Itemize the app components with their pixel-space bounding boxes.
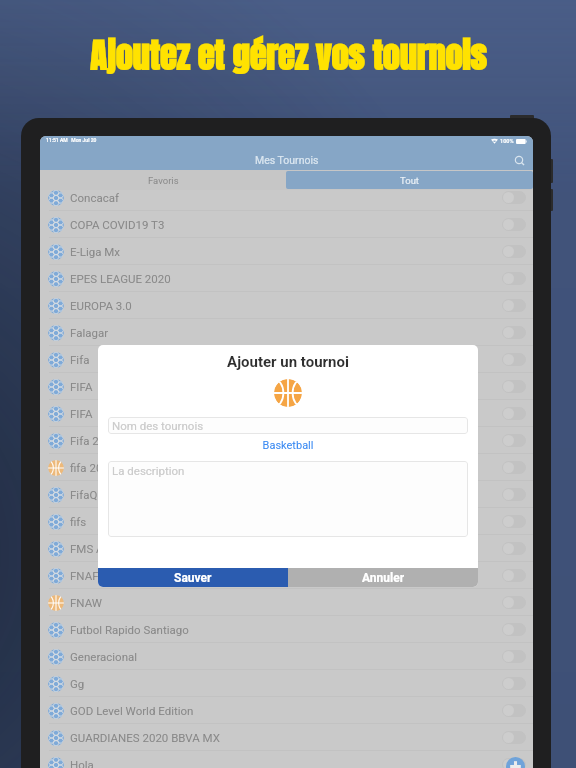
staticText: Annuler [362, 571, 405, 585]
staticText: Futbol Rapido Santiago [70, 623, 189, 636]
button[interactable] [502, 299, 526, 312]
staticText: COPA COVID19 T3 [70, 218, 165, 231]
staticText: Fifa 21 [70, 434, 106, 447]
staticText: FMS Argentina [70, 542, 146, 555]
button[interactable]: GUARDIANES 2020 BBVA MX [40, 724, 533, 751]
button[interactable]: Fifa 21 [40, 427, 533, 454]
button[interactable]: Add tournament [506, 757, 525, 768]
button[interactable]: Generacional [40, 643, 533, 670]
button[interactable]: Concacaf [40, 190, 533, 211]
staticText: La description [112, 464, 185, 477]
button[interactable]: FNAF [40, 562, 533, 589]
button[interactable] [502, 704, 526, 717]
button[interactable] [502, 380, 526, 393]
button[interactable]: FMS Argentina [40, 535, 533, 562]
button[interactable]: Sauver [98, 568, 288, 587]
staticText: GOD Level World Edition [70, 704, 194, 717]
staticText: Concacaf [70, 191, 119, 204]
button[interactable]: Nom des tournois [108, 417, 468, 434]
button[interactable]: COPA COVID19 T3 [40, 211, 533, 238]
staticText: FNAW [70, 596, 102, 609]
button[interactable]: Futbol Rapido Santiago [40, 616, 533, 643]
button[interactable]: fifa 20 [40, 454, 533, 481]
staticText: FIFA [70, 380, 93, 393]
button[interactable]: Gg [40, 670, 533, 697]
staticText: Sauver [174, 571, 212, 585]
staticText: fifa 20 [70, 461, 103, 474]
button[interactable]: GOD Level World Edition [40, 697, 533, 724]
button[interactable] [502, 542, 526, 555]
staticText: Ajoutez et gérez vos tournois [0, 30, 576, 81]
button[interactable]: FIFA [40, 373, 533, 400]
button[interactable] [502, 677, 526, 690]
button[interactable]: Basketball [108, 439, 468, 452]
button[interactable] [502, 758, 526, 768]
button[interactable]: La description [108, 461, 468, 537]
button[interactable] [502, 731, 526, 744]
button[interactable]: EPES LEAGUE 2020 [40, 265, 533, 292]
button[interactable] [502, 191, 526, 204]
staticText: 11:51 AM Mon Jul 20 [46, 137, 97, 143]
button[interactable] [502, 623, 526, 636]
button[interactable]: Favoris [40, 170, 286, 190]
button[interactable]: fifs [40, 508, 533, 535]
button[interactable] [502, 218, 526, 231]
staticText: FNAF [70, 569, 99, 582]
button[interactable]: Annuler [288, 568, 478, 587]
button[interactable]: Hola [40, 751, 533, 768]
staticText: Falagar [70, 326, 109, 339]
button[interactable]: EUROPA 3.0 [40, 292, 533, 319]
staticText: FifaQ [70, 488, 98, 501]
staticText: Ajouter un tournoi [108, 353, 468, 371]
button[interactable]: E-Liga Mx [40, 238, 533, 265]
staticText: Hola [70, 758, 94, 768]
staticText: FIFA [70, 407, 93, 420]
staticText: 100% [500, 138, 514, 144]
staticText: GUARDIANES 2020 BBVA MX [70, 731, 220, 744]
button[interactable] [502, 326, 526, 339]
staticText: EUROPA 3.0 [70, 299, 132, 312]
button[interactable] [502, 515, 526, 528]
button[interactable] [502, 461, 526, 474]
button[interactable] [502, 596, 526, 609]
button[interactable] [502, 272, 526, 285]
staticText: Gg [70, 677, 85, 690]
button[interactable] [502, 353, 526, 366]
button[interactable]: Falagar [40, 319, 533, 346]
staticText: fifs [70, 515, 87, 528]
staticText: Generacional [70, 650, 138, 663]
staticText: EPES LEAGUE 2020 [70, 272, 171, 285]
button[interactable] [502, 569, 526, 582]
button[interactable]: FifaQ [40, 481, 533, 508]
staticText: Mes Tournois [255, 154, 319, 166]
button[interactable] [502, 434, 526, 447]
staticText: E-Liga Mx [70, 245, 121, 258]
button[interactable]: Search [512, 153, 526, 167]
staticText: Fifa [70, 353, 90, 366]
button[interactable]: FIFA [40, 400, 533, 427]
staticText: Tout [400, 175, 419, 186]
button[interactable]: FNAW [40, 589, 533, 616]
button[interactable] [502, 407, 526, 420]
button[interactable] [502, 650, 526, 663]
staticText: Favoris [148, 175, 179, 186]
button[interactable]: Tout [286, 171, 533, 189]
button[interactable] [502, 245, 526, 258]
button[interactable]: Fifa [40, 346, 533, 373]
staticText: Nom des tournois [112, 419, 204, 432]
button[interactable] [502, 488, 526, 501]
